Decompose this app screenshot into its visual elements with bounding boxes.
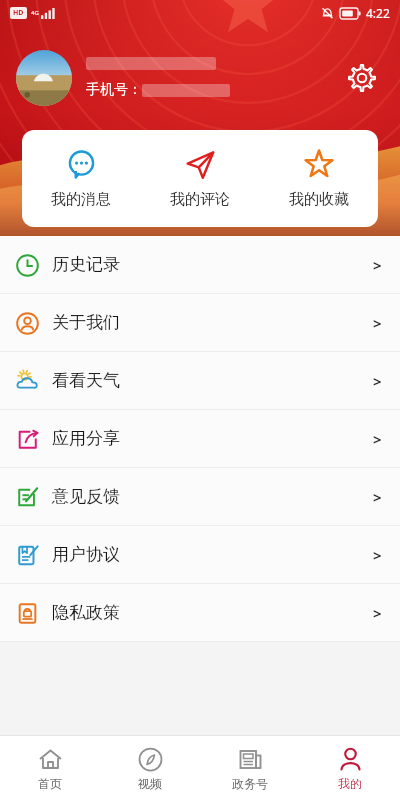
staticText: 政务号	[232, 776, 268, 791]
staticText: 看看天气	[52, 370, 120, 391]
staticText: 4G	[31, 9, 39, 17]
staticText: 我的评论	[170, 190, 230, 209]
button[interactable]: 我的评论	[140, 130, 259, 227]
staticText: 我的收藏	[289, 190, 349, 209]
staticText: >	[373, 313, 382, 333]
button[interactable]: 视频	[100, 736, 200, 800]
staticText: 隐私政策	[52, 602, 120, 623]
staticText: 视频	[138, 776, 162, 791]
staticText: 我的	[338, 776, 362, 791]
staticText: 关于我们	[52, 312, 120, 333]
button[interactable]: 我的	[300, 736, 400, 800]
button[interactable]: 首页	[0, 736, 100, 800]
button[interactable]: 隐私政策	[0, 584, 400, 641]
staticText: 首页	[38, 776, 62, 791]
button[interactable]: 我的消息	[22, 130, 140, 227]
button[interactable]: 政务号	[200, 736, 300, 800]
button[interactable]: 意见反馈	[0, 468, 400, 525]
staticText: >	[373, 255, 382, 275]
staticText: 应用分享	[52, 428, 120, 449]
staticText: >	[373, 487, 382, 507]
button[interactable]: 历史记录	[0, 236, 400, 293]
button[interactable]: 用户协议	[0, 526, 400, 583]
staticText: HD	[13, 8, 24, 18]
staticText: 意见反馈	[52, 486, 120, 507]
staticText: 手机号：	[86, 81, 142, 99]
button[interactable]: 我的收藏	[259, 130, 378, 227]
button[interactable]: 应用分享	[0, 410, 400, 467]
staticText: >	[373, 545, 382, 565]
button[interactable]: 关于我们	[0, 294, 400, 351]
staticText: 用户协议	[52, 544, 120, 565]
staticText: 4:22	[366, 5, 390, 21]
staticText: >	[373, 603, 382, 623]
staticText: >	[373, 371, 382, 391]
button[interactable]: 看看天气	[0, 352, 400, 409]
staticText: 我的消息	[51, 190, 111, 209]
staticText: >	[373, 429, 382, 449]
button[interactable]: Settings	[340, 56, 384, 100]
staticText: 历史记录	[52, 254, 120, 275]
